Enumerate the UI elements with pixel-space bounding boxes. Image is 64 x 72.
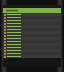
button[interactable] bbox=[3, 16, 61, 19]
button[interactable] bbox=[3, 46, 61, 49]
button[interactable] bbox=[3, 40, 61, 43]
button[interactable] bbox=[3, 43, 61, 46]
button[interactable] bbox=[3, 31, 61, 34]
button[interactable] bbox=[3, 19, 61, 22]
button[interactable] bbox=[3, 37, 61, 40]
button[interactable] bbox=[3, 13, 61, 16]
button[interactable] bbox=[3, 34, 61, 37]
button[interactable] bbox=[3, 28, 61, 31]
button[interactable] bbox=[3, 52, 61, 55]
button[interactable] bbox=[3, 55, 61, 58]
button[interactable] bbox=[3, 25, 61, 28]
button[interactable] bbox=[3, 22, 61, 25]
button[interactable] bbox=[3, 8, 61, 13]
button[interactable] bbox=[3, 49, 61, 52]
